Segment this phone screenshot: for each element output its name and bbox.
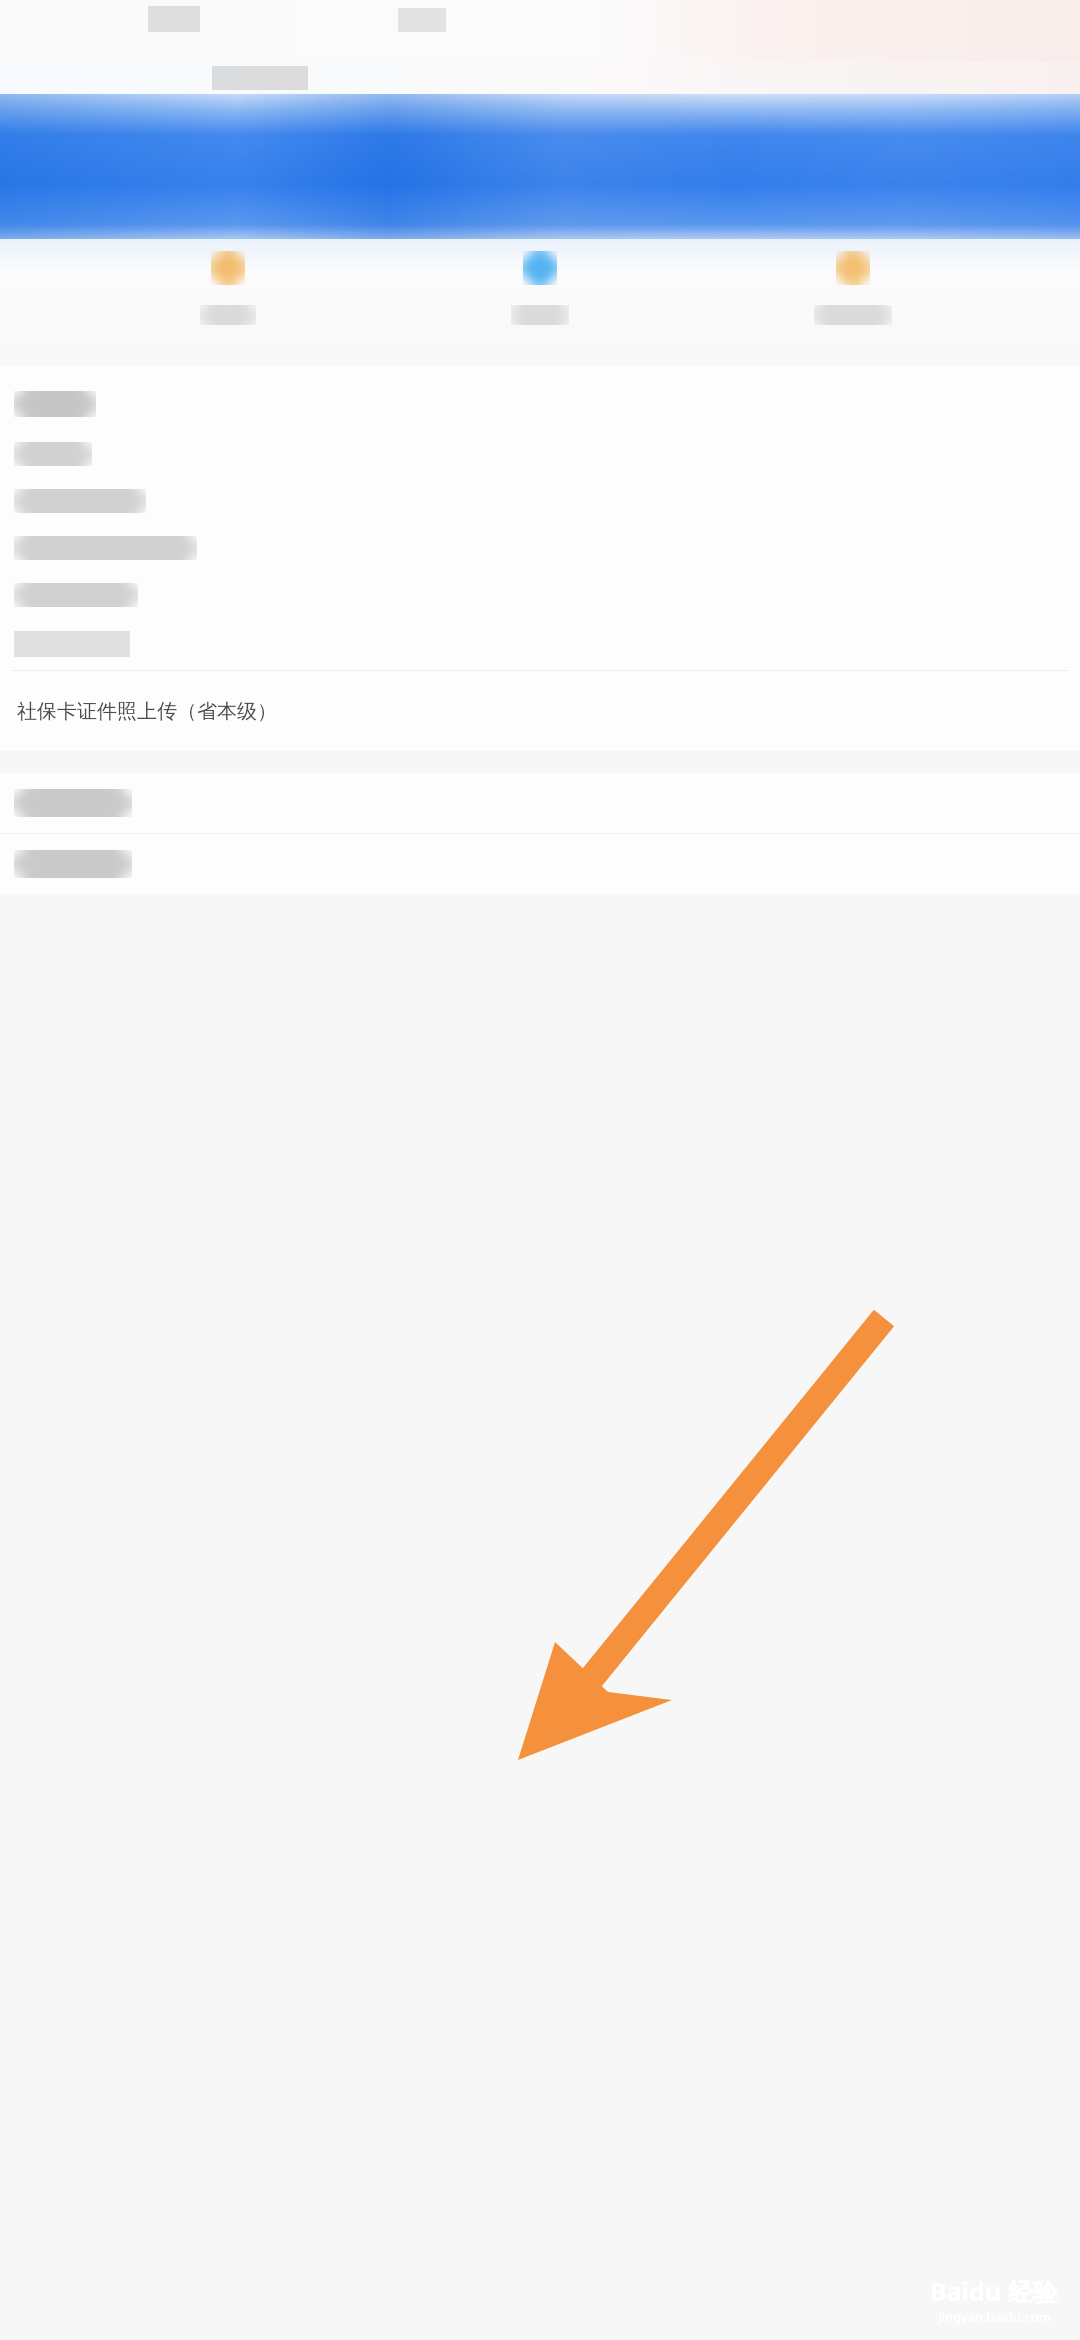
staticText: 社保卡证件照上传（省本级） (17, 699, 277, 724)
button[interactable] (0, 524, 1080, 571)
button[interactable] (0, 618, 1080, 670)
button[interactable] (0, 773, 1080, 833)
button[interactable]: Quick entry (455, 239, 625, 325)
button[interactable] (0, 430, 1080, 477)
button[interactable]: Quick entry (768, 239, 938, 325)
button[interactable] (0, 571, 1080, 618)
button[interactable] (0, 834, 1080, 894)
button[interactable] (0, 477, 1080, 524)
button[interactable]: 社保卡证件照上传（省本级） (0, 671, 1080, 751)
staticText: Baidu 经验 (930, 2274, 1058, 2308)
button[interactable]: Quick entry (143, 239, 313, 325)
